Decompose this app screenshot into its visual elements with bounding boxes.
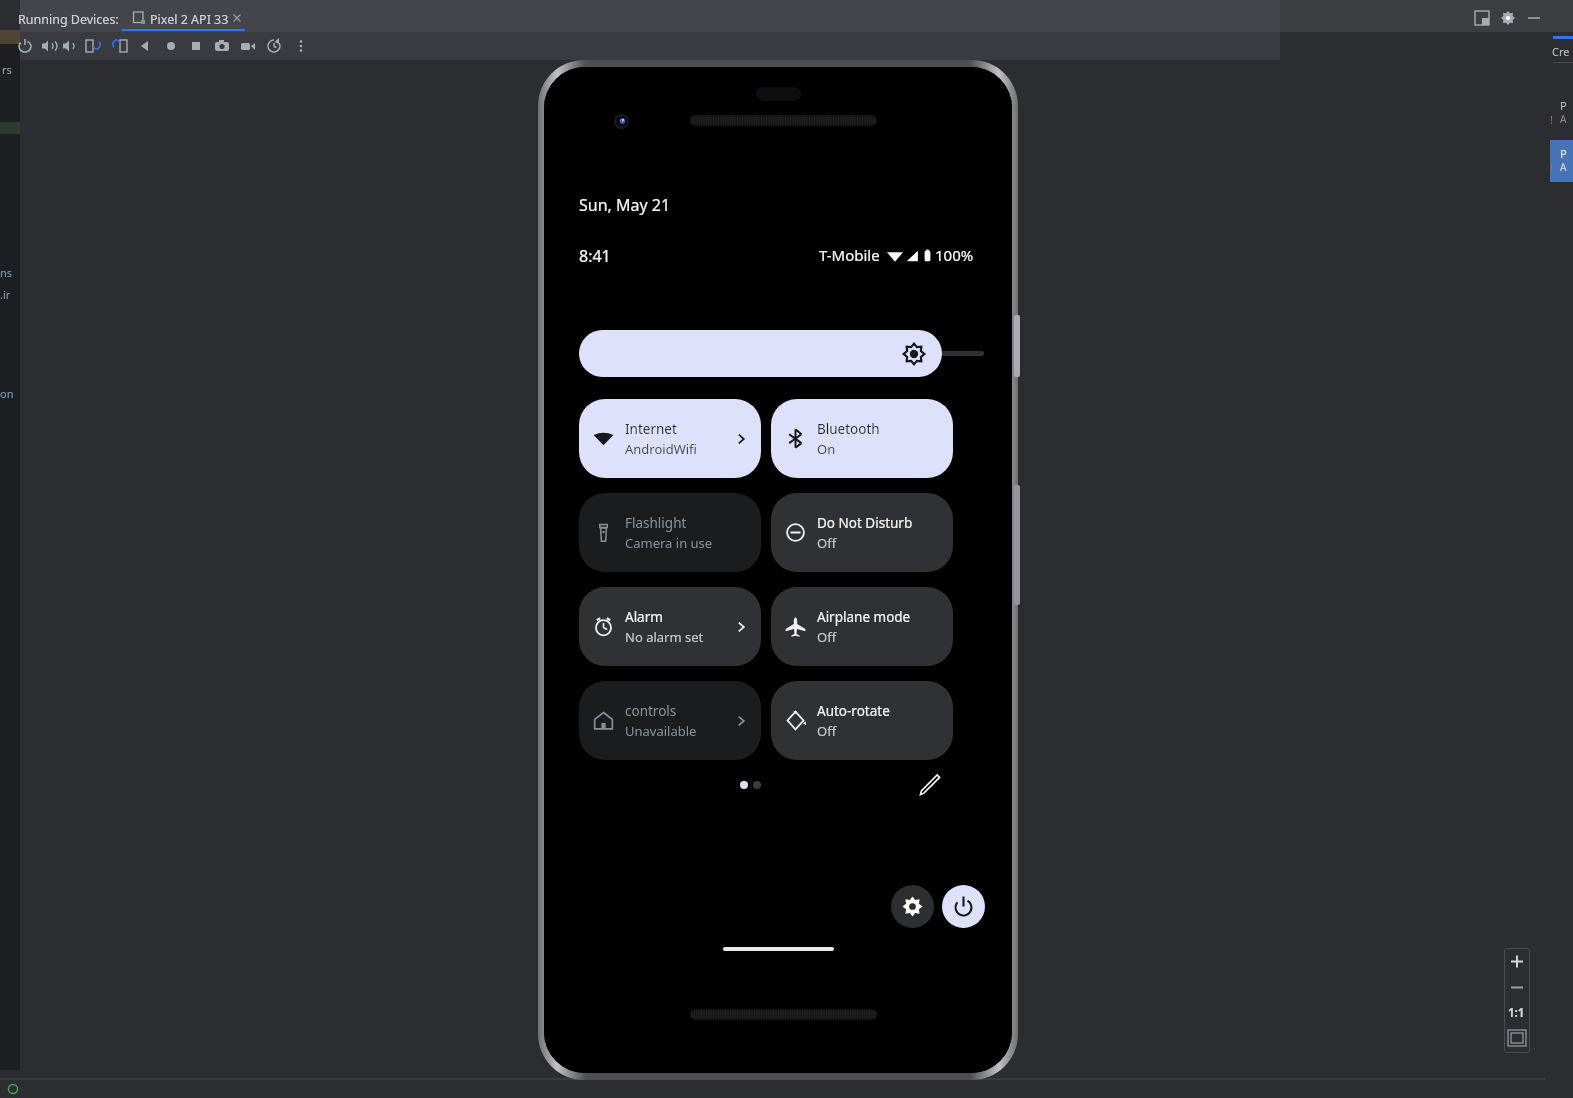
staticText: 1:1 (1508, 1005, 1525, 1021)
button[interactable]: Rotate right (112, 38, 128, 54)
button[interactable]: 1:1 (1504, 1000, 1530, 1025)
button[interactable]: Screenshot (214, 38, 230, 54)
button[interactable]: Brightness (579, 330, 942, 377)
button[interactable]: Zoom out (1504, 975, 1530, 1000)
button[interactable]: Back (137, 38, 153, 54)
button[interactable] (120, 4, 245, 32)
button[interactable]: Internet (579, 399, 761, 478)
button[interactable]: Edit tiles (912, 767, 948, 803)
staticText: rs (2, 62, 12, 77)
staticText: ! (1550, 160, 1553, 175)
button[interactable]: Fit to screen (1506, 1028, 1528, 1048)
button[interactable]: Close tab (230, 11, 244, 25)
staticText: Off (817, 628, 837, 646)
staticText: On (817, 440, 836, 458)
staticText: P (1560, 146, 1567, 161)
button[interactable]: History (266, 38, 282, 54)
staticText: Internet (625, 420, 677, 438)
staticText: Alarm (625, 608, 663, 626)
button[interactable]: Airplane mode (771, 587, 953, 666)
staticText: Off (817, 534, 837, 552)
button[interactable]: Minimize (1526, 10, 1542, 26)
staticText: on (0, 386, 14, 401)
button[interactable]: Overview (188, 38, 204, 54)
staticText: A (1560, 160, 1567, 174)
staticText: Off (817, 722, 837, 740)
button[interactable]: Volume up (40, 38, 56, 54)
staticText: controls (625, 702, 677, 720)
staticText: Auto-rotate (817, 702, 890, 720)
button[interactable]: Layout (1474, 10, 1490, 26)
staticText: Camera in use (625, 534, 713, 552)
staticText: Flashlight (625, 514, 687, 532)
button[interactable]: Volume down (61, 38, 77, 54)
button[interactable]: Rotate left (85, 38, 101, 54)
staticText: Pixel 2 API 33 (150, 11, 229, 28)
staticText: .ir (0, 287, 11, 302)
staticText: A (1560, 112, 1567, 126)
button[interactable]: Auto-rotate (771, 681, 953, 760)
staticText: Cre (1552, 44, 1570, 59)
button[interactable]: Alarm (579, 587, 761, 666)
button[interactable]: Settings (891, 885, 934, 928)
staticText: ! (1550, 112, 1553, 127)
button[interactable]: Record (240, 38, 256, 54)
button[interactable]: Home (163, 38, 179, 54)
button[interactable]: Settings (1500, 10, 1516, 26)
staticText: 100% (935, 245, 974, 265)
staticText: No alarm set (625, 628, 704, 646)
staticText: Do Not Disturb (817, 514, 913, 532)
button[interactable]: controls (579, 681, 761, 760)
button[interactable]: Power (17, 38, 33, 54)
staticText: Unavailable (625, 722, 697, 740)
staticText: AndroidWifi (625, 440, 697, 458)
staticText: Bluetooth (817, 420, 880, 438)
staticText: P (1560, 98, 1567, 113)
staticText: T-Mobile (819, 245, 880, 265)
button[interactable]: Power (942, 885, 985, 928)
staticText: Airplane mode (817, 608, 911, 626)
staticText: Running Devices: (18, 11, 119, 28)
staticText: ns (0, 265, 13, 280)
button[interactable]: Do Not Disturb (771, 493, 953, 572)
button[interactable]: Bluetooth (771, 399, 953, 478)
button[interactable]: Zoom in (1504, 948, 1530, 975)
staticText: Sun, May 21 (579, 194, 671, 216)
button[interactable]: More (293, 38, 309, 54)
staticText: 8:41 (579, 245, 611, 267)
button[interactable]: Flashlight (579, 493, 761, 572)
